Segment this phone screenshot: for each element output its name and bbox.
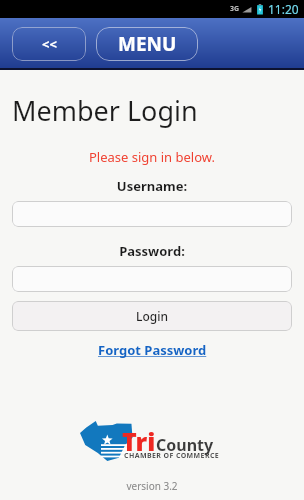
button[interactable] <box>12 201 292 227</box>
staticText: Password: <box>0 242 304 260</box>
staticText: Please sign in below. <box>0 148 304 166</box>
staticText: Login <box>136 308 168 324</box>
button[interactable]: Login <box>12 301 292 331</box>
button[interactable]: Back <box>12 27 86 61</box>
staticText: version 3.2 <box>0 479 304 493</box>
staticText: CHAMBER OF COMMERCE <box>124 451 220 461</box>
staticText: Tri <box>122 424 156 458</box>
button[interactable]: MENU <box>96 27 198 61</box>
staticText: Member Login <box>12 92 198 129</box>
staticText: County <box>156 434 214 456</box>
button[interactable] <box>12 266 292 292</box>
staticText: << <box>42 35 57 53</box>
staticText: MENU <box>118 31 177 57</box>
button[interactable]: Forgot Password <box>94 339 211 361</box>
staticText: 3G <box>230 4 240 14</box>
staticText: Username: <box>0 177 304 195</box>
staticText: 11:20 <box>268 1 299 17</box>
staticText: Forgot Password <box>98 341 207 359</box>
